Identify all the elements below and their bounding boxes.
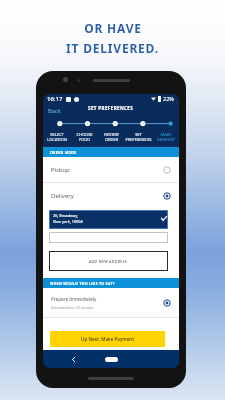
staticText: REVIEW ORDER xyxy=(104,132,119,142)
staticText: 22% xyxy=(163,95,174,102)
button[interactable]: Delivery xyxy=(43,183,179,209)
staticText: CHOOSE FOOD xyxy=(76,132,93,142)
staticText: Prepare Immediately xyxy=(51,296,97,302)
staticText: Estimated time: 20 minutes xyxy=(51,305,94,309)
staticText: Delivery xyxy=(51,192,74,200)
button[interactable]: Back xyxy=(46,105,63,117)
staticText: IT DELIVERED. xyxy=(66,40,159,56)
button[interactable] xyxy=(49,232,168,243)
button[interactable]: Up Next: Make Payment xyxy=(50,331,165,347)
button[interactable]: Prepare Immediately xyxy=(43,288,179,317)
button[interactable]: Back xyxy=(67,353,79,365)
staticText: 16:17 xyxy=(47,95,63,103)
staticText: Back xyxy=(48,107,61,115)
staticText: SET PREFERENCES xyxy=(125,132,152,142)
staticText: ORDER MODE xyxy=(50,150,77,155)
staticText: OR HAVE xyxy=(84,20,142,36)
staticText: MAKE PAYMENT xyxy=(157,132,175,142)
staticText: ADD NEW ADDRESS xyxy=(89,259,128,264)
button[interactable]: Home xyxy=(105,357,118,362)
staticText: SET PREFERENCES xyxy=(88,105,134,111)
staticText: SELECT LOCATION xyxy=(47,132,67,142)
staticText: WHEN WOULD YOU LIKE TO EAT? xyxy=(50,281,115,286)
staticText: Pickup xyxy=(51,166,70,174)
staticText: 26, Broadway, xyxy=(53,213,78,218)
button[interactable]: Pickup xyxy=(43,157,179,182)
staticText: New york, 10004 xyxy=(53,219,83,224)
button[interactable]: 26, Broadway, xyxy=(49,210,168,229)
button[interactable]: ADD NEW ADDRESS xyxy=(49,251,168,271)
staticText: Up Next: Make Payment xyxy=(81,336,134,342)
